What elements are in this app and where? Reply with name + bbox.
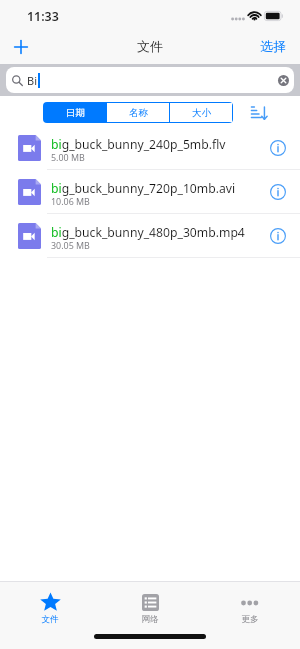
button[interactable]: 选择 (256, 35, 290, 57)
button[interactable]: Sort order (248, 102, 270, 123)
button[interactable]: File info (265, 179, 291, 205)
button[interactable]: big_buck_bunny_240p_5mb.flv (0, 126, 300, 170)
staticText: 更多 (241, 614, 259, 625)
button[interactable]: 网络 (100, 592, 200, 626)
staticText: Bi (27, 73, 37, 88)
staticText: 文件 (41, 614, 59, 625)
staticText: 30.05 MB (51, 239, 90, 251)
button[interactable]: Clear search (278, 75, 289, 86)
button[interactable]: 文件 (0, 592, 100, 626)
button[interactable]: Add (8, 34, 34, 60)
staticText: 选择 (260, 38, 286, 54)
staticText: 10.06 MB (51, 195, 90, 207)
staticText: big_buck_bunny_480p_30mb.mp4 (51, 224, 245, 241)
staticText: 日期 (66, 107, 85, 119)
button[interactable]: File info (265, 223, 291, 249)
staticText: 5.00 MB (51, 151, 85, 163)
staticText: 名称 (129, 107, 148, 119)
button[interactable]: 更多 (200, 592, 300, 626)
button[interactable]: File info (265, 135, 291, 161)
staticText: big_buck_bunny_240p_5mb.flv (51, 136, 226, 153)
button[interactable]: big_buck_bunny_720p_10mb.avi (0, 170, 300, 214)
button[interactable]: Bi (6, 67, 294, 93)
button[interactable]: big_buck_bunny_480p_30mb.mp4 (0, 214, 300, 258)
staticText: 网络 (141, 614, 159, 625)
staticText: 文件 (137, 38, 163, 54)
button[interactable]: 日期 (44, 103, 106, 122)
staticText: 大小 (192, 107, 211, 119)
staticText: big_buck_bunny_720p_10mb.avi (51, 180, 236, 197)
button[interactable]: 名称 (107, 103, 169, 122)
staticText: 11:33 (27, 8, 59, 25)
button[interactable]: 大小 (170, 103, 232, 122)
